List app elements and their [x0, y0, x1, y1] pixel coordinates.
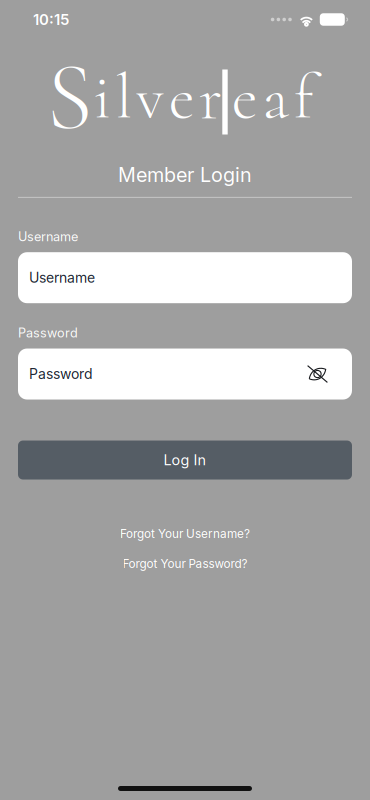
staticText: Username	[18, 229, 78, 244]
button[interactable]: Forgot Your Password?	[110, 553, 259, 575]
staticText: Forgot Your Password?	[122, 557, 247, 571]
staticText: Log In	[163, 451, 206, 469]
button[interactable]: Log In	[18, 440, 352, 479]
staticText: eaf	[232, 58, 314, 136]
staticText: Password	[18, 325, 78, 340]
staticText: 10:15	[33, 10, 69, 29]
staticText: Username	[29, 269, 95, 286]
staticText: S	[46, 39, 93, 155]
staticText: Password	[29, 366, 93, 382]
button[interactable]: Username	[18, 252, 352, 303]
staticText: Forgot Your Username?	[120, 526, 250, 541]
staticText: Member Login	[118, 163, 252, 187]
button[interactable]: Forgot Your Username?	[108, 522, 262, 545]
staticText: ilver	[93, 58, 222, 136]
button[interactable]: Password	[18, 348, 352, 399]
